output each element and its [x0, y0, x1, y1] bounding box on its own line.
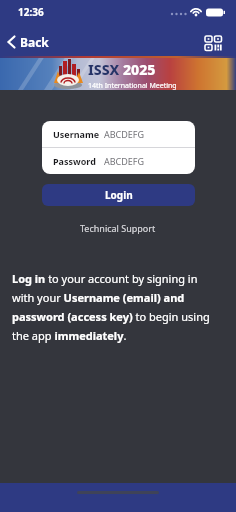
staticText: Back	[20, 34, 49, 50]
staticText: Login	[105, 188, 133, 202]
staticText: 14th International Meeting	[88, 81, 177, 90]
button[interactable]: Back	[7, 34, 49, 50]
button[interactable]	[205, 36, 222, 51]
button[interactable]: Technical Support	[80, 222, 156, 234]
staticText: Technical Support	[80, 222, 156, 234]
staticText: Username	[53, 128, 100, 140]
staticText: ABCDEFG	[104, 155, 145, 167]
staticText: 12:36	[18, 5, 44, 19]
button[interactable]: Username	[42, 121, 195, 147]
button[interactable]: Login	[42, 184, 195, 206]
button[interactable]: Password	[42, 148, 195, 174]
staticText: ISSX	[88, 60, 123, 79]
staticText: ABCDEFG	[104, 128, 145, 140]
staticText: Log in to your account by signing in wit…	[12, 271, 224, 343]
button[interactable]: ISSX	[0, 56, 236, 90]
staticText: Password	[53, 155, 96, 167]
staticText: 2025	[123, 60, 156, 79]
